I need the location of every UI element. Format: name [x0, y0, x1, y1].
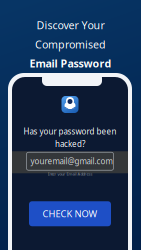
staticText: Enter your Email Address — [47, 171, 92, 176]
staticText: Discover Your — [36, 18, 104, 32]
staticText: youremail@gmail.com — [30, 156, 112, 166]
button[interactable]: CHECK NOW — [29, 201, 111, 226]
staticText: Email Password — [29, 56, 111, 70]
staticText: CHECK NOW — [42, 208, 97, 220]
staticText: hacked? — [55, 139, 85, 149]
staticText: Compromised — [35, 37, 106, 51]
staticText: Has your password been — [23, 126, 116, 137]
